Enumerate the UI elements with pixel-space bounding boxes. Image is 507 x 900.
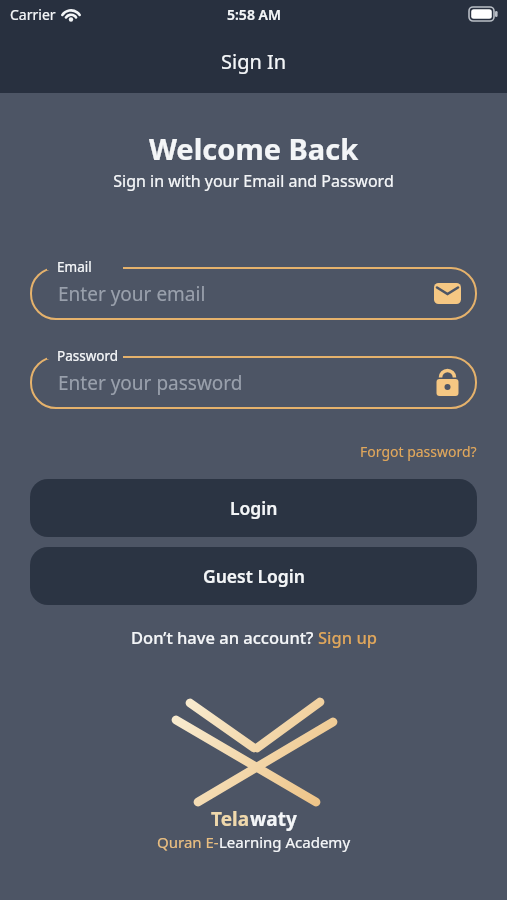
button[interactable]: Forgot password? xyxy=(360,442,477,461)
staticText: waty xyxy=(250,806,297,832)
button[interactable]: Login xyxy=(30,479,477,537)
staticText: Learning Academy xyxy=(219,832,351,852)
staticText: Enter your email xyxy=(58,281,206,307)
staticText: Email xyxy=(57,258,92,276)
button[interactable]: Guest Login xyxy=(30,547,477,605)
button[interactable]: Enter your email xyxy=(30,267,477,320)
button[interactable]: Enter your password xyxy=(30,356,477,409)
staticText: Enter your password xyxy=(58,370,243,396)
button[interactable]: Sign up xyxy=(318,626,377,648)
staticText: Sign In xyxy=(221,48,287,75)
staticText: Carrier xyxy=(10,5,56,24)
staticText: Sign in with your Email and Password xyxy=(0,170,507,192)
staticText: Tela xyxy=(211,806,250,832)
staticText: Login xyxy=(230,496,278,520)
staticText: Welcome Back xyxy=(0,129,507,168)
staticText: Quran E- xyxy=(157,832,219,852)
staticText: Don’t have an account? xyxy=(131,626,318,648)
staticText: 5:58 AM xyxy=(227,5,281,24)
staticText: Guest Login xyxy=(203,564,305,588)
staticText: Password xyxy=(57,347,119,365)
